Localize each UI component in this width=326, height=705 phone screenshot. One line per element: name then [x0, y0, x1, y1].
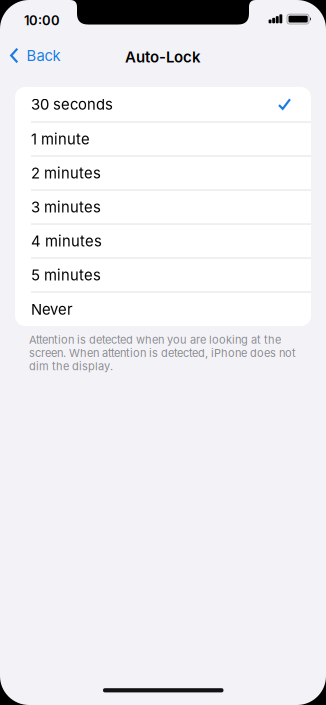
staticText: screen. When attention is detected, iPho…	[29, 346, 296, 360]
staticText: 2 minutes	[31, 164, 101, 182]
button[interactable]: Never	[15, 292, 311, 326]
button[interactable]: 4 minutes	[15, 224, 311, 257]
staticText: Never	[31, 300, 73, 318]
staticText: dim the display.	[29, 360, 113, 373]
staticText: 3 minutes	[31, 198, 101, 216]
staticText: 4 minutes	[31, 232, 102, 250]
staticText: 1 minute	[31, 130, 90, 148]
staticText: Back	[26, 46, 60, 64]
button[interactable]: 30 seconds	[15, 87, 311, 121]
button[interactable]: 5 minutes	[15, 258, 311, 291]
staticText: 5 minutes	[31, 266, 101, 284]
staticText: 10:00	[24, 13, 60, 28]
button[interactable]: 1 minute	[15, 122, 311, 155]
staticText: 30 seconds	[31, 95, 113, 113]
staticText: Attention is detected when you are looki…	[29, 333, 281, 346]
button[interactable]: 3 minutes	[15, 190, 311, 223]
staticText: Auto-Lock	[125, 48, 201, 66]
button[interactable]: 2 minutes	[15, 156, 311, 189]
button[interactable]: Back	[0, 46, 60, 67]
